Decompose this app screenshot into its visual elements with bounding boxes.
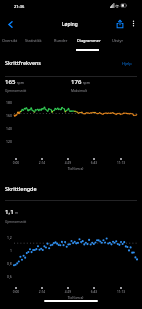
staticText: 160 (6, 113, 12, 118)
staticText: Statistikk (25, 38, 42, 43)
staticText: Oversikt (2, 38, 18, 43)
staticText: Skrittlengde (5, 185, 37, 192)
staticText: Hjelp (122, 61, 132, 66)
button[interactable]: Back (2, 16, 18, 32)
staticText: Maksimalt (71, 88, 88, 92)
staticText: 1,1 (5, 207, 14, 215)
staticText: 6:43 (85, 290, 103, 294)
staticText: Skrittfrekvens (5, 59, 41, 66)
staticText: 176 (71, 77, 82, 85)
staticText: 0,6 (7, 274, 12, 279)
staticText: 1,2 (7, 235, 12, 240)
staticText: 0:00 (7, 161, 25, 165)
staticText: Gjennomsnitt (5, 219, 27, 223)
staticText: 21:36 (14, 4, 25, 9)
staticText: 4:29 (59, 161, 77, 165)
staticText: m (15, 210, 19, 215)
staticText: 6:43 (85, 161, 103, 165)
staticText: spm (83, 80, 90, 85)
staticText: 165 (5, 77, 16, 85)
button[interactable]: Statistikk (0, 0, 17, 8)
staticText: 11:13 (112, 161, 130, 165)
staticText: Løping (62, 21, 78, 28)
button[interactable]: Diagrammer (0, 0, 24, 8)
staticText: 4:29 (59, 290, 77, 294)
staticText: Utstyr (112, 38, 124, 43)
staticText: Gjennomsnitt (5, 88, 27, 92)
staticText: spm (17, 80, 24, 85)
staticText: Tid (t:m:s) (14, 166, 137, 171)
button[interactable]: Oversikt (0, 0, 16, 8)
button[interactable]: Share (112, 16, 127, 31)
staticText: 11:13 (112, 290, 130, 294)
staticText: 180 (6, 100, 12, 105)
staticText: 120 (6, 139, 12, 144)
staticText: Tid (t:m:s) (14, 295, 137, 300)
staticText: Runder (54, 38, 68, 43)
staticText: 1 (10, 248, 12, 253)
staticText: 0,8 (7, 261, 12, 266)
staticText: Diagrammer (77, 38, 101, 43)
button[interactable]: More options (126, 16, 141, 31)
staticText: 2:14 (33, 161, 51, 165)
staticText: 140 (6, 126, 12, 131)
staticText: 0:00 (7, 290, 25, 294)
staticText: 2:14 (33, 290, 51, 294)
